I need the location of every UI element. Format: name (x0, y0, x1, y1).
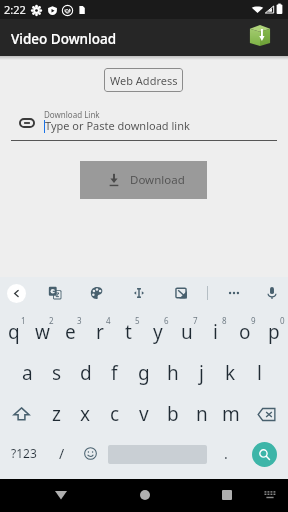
button[interactable]: o (230, 312, 259, 352)
button[interactable]: b (158, 394, 187, 434)
staticText: d (80, 360, 92, 386)
staticText: v (139, 401, 149, 427)
staticText: . (224, 444, 228, 463)
staticText: 1 (21, 315, 26, 326)
button[interactable]: l (245, 353, 274, 393)
staticText: q (8, 319, 20, 345)
staticText: 0 (280, 315, 285, 326)
staticText: 2:22 (4, 2, 26, 17)
staticText: r (96, 319, 104, 345)
staticText: j (199, 360, 204, 386)
button[interactable]: Voice input (261, 282, 283, 304)
button[interactable]: Hide keyboard (259, 484, 280, 505)
button[interactable]: ?123 (0, 433, 47, 473)
button[interactable]: e (56, 312, 85, 352)
staticText: e (65, 319, 76, 345)
button[interactable]: r (85, 312, 114, 352)
button[interactable]: f (100, 353, 129, 393)
staticText: a (22, 360, 33, 386)
button[interactable]: z (42, 394, 71, 434)
staticText: u (181, 319, 193, 345)
staticText: n (196, 401, 208, 427)
button[interactable]: p (259, 312, 288, 352)
button[interactable]: / (47, 433, 76, 473)
button[interactable]: . (210, 433, 242, 473)
staticText: Web Address (110, 73, 178, 88)
button[interactable]: k (216, 353, 245, 393)
button[interactable]: y (143, 312, 172, 352)
staticText: 8 (222, 315, 227, 326)
staticText: 7 (193, 315, 198, 326)
staticText: Video Download (11, 30, 117, 48)
button[interactable]: j (187, 353, 216, 393)
button[interactable]: n (187, 394, 216, 434)
button[interactable]: u (172, 312, 201, 352)
button[interactable]: Backspace (245, 394, 288, 434)
staticText: y (153, 319, 163, 345)
staticText: o (239, 319, 251, 345)
staticText: z (52, 401, 61, 427)
button[interactable]: More options (223, 282, 245, 304)
button[interactable]: Shift (0, 394, 42, 434)
staticText: Download (130, 172, 185, 188)
staticText: t (125, 319, 132, 345)
button[interactable]: w (28, 312, 56, 352)
button[interactable]: Theme (86, 282, 108, 304)
button[interactable]: Web Address (104, 68, 183, 92)
staticText: w (35, 319, 50, 345)
button[interactable]: Download (80, 161, 207, 199)
staticText: / (59, 444, 65, 463)
button[interactable]: c (100, 394, 129, 434)
staticText: l (257, 360, 262, 386)
button[interactable]: Resize keyboard (170, 282, 192, 304)
staticText: 3 (77, 315, 82, 326)
button[interactable]: h (158, 353, 187, 393)
staticText: f (111, 360, 118, 386)
button[interactable]: d (71, 353, 100, 393)
staticText: i (213, 319, 218, 345)
staticText: h (167, 360, 179, 386)
staticText: p (268, 319, 280, 345)
staticText: ?123 (11, 445, 37, 461)
button[interactable]: s (42, 353, 71, 393)
button[interactable]: Search (252, 442, 277, 467)
button[interactable]: x (71, 394, 100, 434)
button[interactable]: Emoji (76, 433, 105, 473)
button[interactable]: Home (131, 481, 158, 508)
button[interactable]: Text editing (128, 282, 150, 304)
staticText: s (52, 360, 62, 386)
button[interactable]: Back (47, 481, 74, 508)
button[interactable]: t (114, 312, 143, 352)
staticText: 6 (164, 315, 169, 326)
button[interactable]: v (129, 394, 158, 434)
button[interactable]: Back (7, 284, 26, 303)
staticText: b (167, 401, 179, 427)
staticText: c (110, 401, 120, 427)
button[interactable]: a (13, 353, 42, 393)
staticText: k (225, 360, 236, 386)
button[interactable]: Downloads (248, 23, 272, 48)
button[interactable]: i (201, 312, 230, 352)
staticText: Type or Paste download link (45, 118, 190, 133)
button[interactable] (105, 433, 210, 473)
staticText: 4 (106, 315, 111, 326)
staticText: 2 (49, 315, 54, 326)
staticText: 9 (251, 315, 256, 326)
staticText: 5 (135, 315, 140, 326)
button[interactable]: m (216, 394, 245, 434)
staticText: Download Link (44, 109, 100, 120)
staticText: g (138, 360, 150, 386)
button[interactable]: Translate (44, 282, 66, 304)
button[interactable]: Recents (213, 481, 240, 508)
staticText: x (80, 401, 91, 427)
staticText: m (222, 401, 240, 427)
button[interactable]: q (0, 312, 28, 352)
button[interactable]: g (129, 353, 158, 393)
